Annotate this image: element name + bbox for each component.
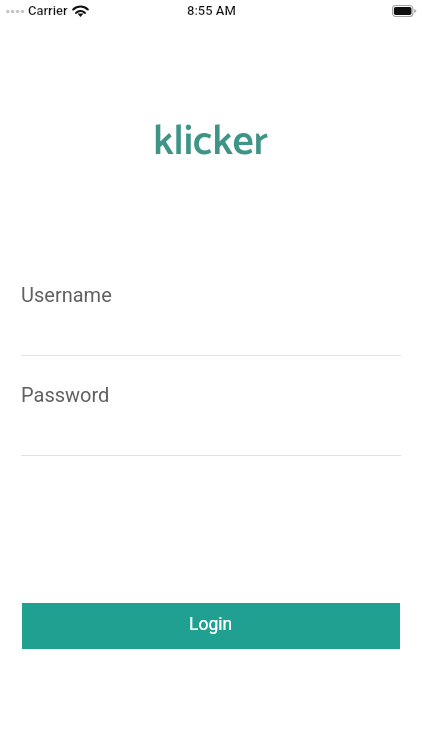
staticText: Username [21, 283, 112, 306]
other: Wi-Fi signal [73, 6, 88, 16]
other: Signal strength [5, 10, 27, 16]
button[interactable]: Password [21, 378, 401, 456]
staticText: Carrier [28, 3, 68, 18]
staticText: 8:55 AM [187, 3, 236, 18]
button[interactable]: Username [21, 278, 401, 356]
staticText: Password [21, 383, 110, 406]
button[interactable]: Login [22, 603, 400, 649]
staticText: Login [189, 614, 233, 635]
staticText: klicker [153, 109, 269, 169]
other: Battery full [392, 5, 417, 17]
